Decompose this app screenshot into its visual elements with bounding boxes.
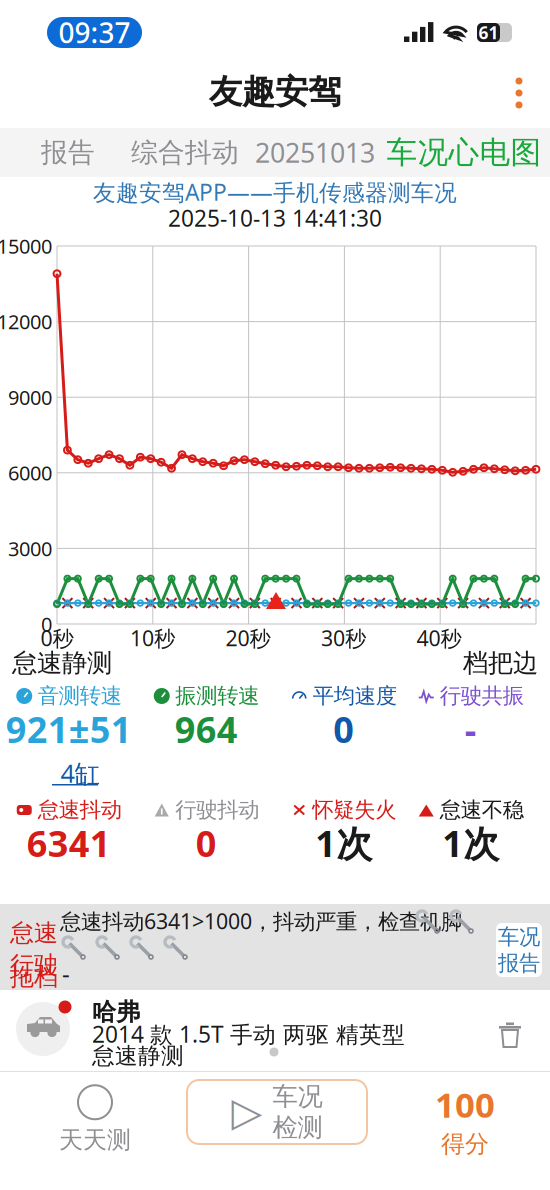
staticText: 0 — [41, 611, 52, 637]
staticText: 1次 — [315, 819, 372, 867]
button[interactable]: Delete vehicle — [496, 1020, 524, 1050]
button[interactable]: More options — [498, 70, 540, 116]
staticText: 车况心电图 — [386, 134, 541, 171]
staticText: 怠速静测 — [12, 647, 112, 678]
staticText: 振测转速 — [175, 683, 259, 709]
staticText: 6341 — [27, 819, 111, 867]
staticText: 车况 — [272, 1081, 322, 1112]
staticText: 964 — [175, 705, 238, 753]
staticText: 0 — [333, 705, 354, 753]
staticText: - — [62, 957, 70, 989]
staticText: 怠速不稳 — [440, 797, 524, 823]
staticText: 怠速静测 — [92, 1042, 184, 1070]
staticText: 检测 — [272, 1112, 322, 1143]
staticText: 友趣安驾 — [209, 71, 341, 112]
staticText: 怠速抖动 — [38, 797, 122, 823]
staticText: 天天测 — [59, 1125, 131, 1155]
staticText: 0 — [196, 819, 217, 867]
button[interactable]: 报告 — [18, 128, 118, 177]
staticText: 20251013 — [255, 135, 375, 170]
staticText: 车况 — [498, 924, 540, 950]
staticText: 3000 — [8, 535, 52, 562]
staticText: 2014 款 1.5T 手动 两驱 精英型 — [92, 1019, 405, 1049]
staticText: 行驶 — [10, 950, 58, 980]
staticText: 行驶抖动 — [175, 797, 259, 823]
staticText: 100 — [435, 1081, 495, 1127]
staticText: 30秒 — [321, 624, 366, 652]
staticText: 报告 — [41, 136, 95, 169]
button[interactable]: 车况心电图 — [378, 128, 550, 177]
button[interactable]: ▷ — [187, 1080, 367, 1144]
staticText: 6000 — [8, 459, 52, 486]
staticText: 20秒 — [225, 624, 270, 652]
staticText: 怠速 — [10, 918, 58, 948]
staticText: 9000 — [8, 384, 52, 410]
staticText: ▷ — [231, 1089, 262, 1135]
staticText: 10秒 — [130, 624, 175, 652]
button[interactable]: 综合抖动 — [120, 128, 250, 177]
staticText: 1次 — [442, 819, 499, 867]
staticText: 4缸 — [60, 756, 99, 790]
staticText: 12000 — [0, 308, 52, 335]
button[interactable]: 天天测 — [20, 1082, 170, 1158]
staticText: 哈弗 — [92, 997, 140, 1027]
staticText: 拖档 — [10, 962, 58, 992]
staticText: 15000 — [0, 233, 52, 259]
staticText: 怀疑失火 — [312, 797, 396, 823]
staticText: 40秒 — [416, 624, 461, 652]
staticText: 音测转速 — [38, 683, 122, 709]
staticText: 得分 — [441, 1129, 489, 1159]
staticText: 61 — [478, 21, 498, 44]
staticText: 0秒 — [40, 624, 73, 652]
staticText: 09:37 — [58, 14, 130, 51]
staticText: 综合抖动 — [131, 136, 239, 169]
staticText: 报告 — [498, 950, 540, 976]
button[interactable]: 100 — [390, 1082, 540, 1158]
button[interactable]: 车况 — [496, 923, 542, 977]
staticText: 921±51 — [6, 705, 132, 753]
staticText: - — [465, 705, 477, 753]
staticText: 友趣安驾APP——手机传感器测车况 — [93, 177, 457, 207]
staticText: 行驶共振 — [440, 683, 524, 709]
staticText: 档把边 — [463, 647, 538, 678]
staticText: 2025-10-13 14:41:30 — [168, 203, 382, 233]
staticText: 平均速度 — [313, 683, 397, 709]
staticText: 怠速抖动6341>1000，抖动严重，检查机脚 — [60, 907, 462, 935]
button[interactable]: 20251013 — [250, 128, 380, 177]
